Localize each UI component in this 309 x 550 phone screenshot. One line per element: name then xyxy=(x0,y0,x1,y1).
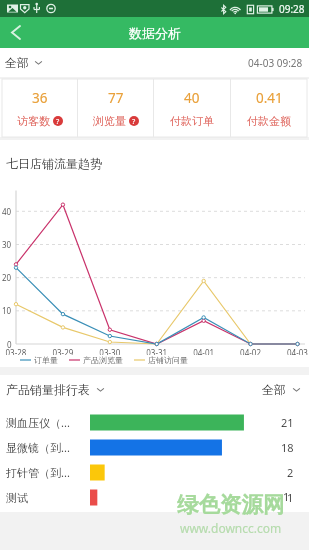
staticText: 付款订单 xyxy=(170,114,214,128)
button[interactable]: 打针管（到... xyxy=(0,460,309,485)
staticText: 访客数 xyxy=(17,114,50,128)
staticText: 测试 xyxy=(6,491,28,505)
staticText: 36 xyxy=(32,89,48,107)
button[interactable]: 36 xyxy=(2,79,77,137)
staticText: 浏览量 xyxy=(93,114,126,128)
staticText: ? xyxy=(56,116,60,126)
staticText: 77 xyxy=(108,89,124,107)
staticText: 打针管（到... xyxy=(6,465,70,480)
staticText: 2 xyxy=(287,465,294,480)
staticText: 40 xyxy=(184,89,200,107)
staticText: 18 xyxy=(281,440,294,455)
button[interactable]: 0.41 xyxy=(231,79,307,137)
staticText: 产品浏览量 xyxy=(83,355,123,365)
staticText: 04-03 09:28 xyxy=(248,56,303,70)
staticText: 全部 xyxy=(262,382,286,397)
button[interactable]: 77 xyxy=(78,79,153,137)
button[interactable]: 显微镜（到... xyxy=(0,435,309,460)
button[interactable]: 全部 xyxy=(5,55,43,70)
staticText: www.downcc.com xyxy=(180,520,282,536)
button[interactable]: 全部 xyxy=(262,382,301,397)
staticText: 21 xyxy=(281,415,294,430)
button[interactable]: 测试 xyxy=(0,485,309,510)
staticText: 全部 xyxy=(5,55,29,70)
staticText: 测血压仪（... xyxy=(6,415,70,430)
staticText: 店铺访问量 xyxy=(148,355,188,365)
staticText: 09:28 xyxy=(279,2,305,16)
staticText: ? xyxy=(132,116,136,126)
button[interactable]: Back xyxy=(0,17,31,48)
button[interactable]: 产品销量排行表 xyxy=(6,382,105,397)
staticText: 0.41 xyxy=(256,89,283,107)
button[interactable]: 40 xyxy=(154,79,230,137)
staticText: 数据分析 xyxy=(129,25,181,41)
staticText: 订单量 xyxy=(34,355,58,365)
button[interactable]: 测血压仪（... xyxy=(0,410,309,435)
staticText: 付款金额 xyxy=(247,114,291,128)
staticText: 显微镜（到... xyxy=(6,440,70,455)
staticText: 七日店铺流量趋势 xyxy=(6,156,102,171)
staticText: 1 xyxy=(283,489,290,504)
staticText: 绿色资源网 xyxy=(177,491,285,518)
staticText: 1 xyxy=(287,490,294,505)
staticText: 产品销量排行表 xyxy=(6,382,90,397)
